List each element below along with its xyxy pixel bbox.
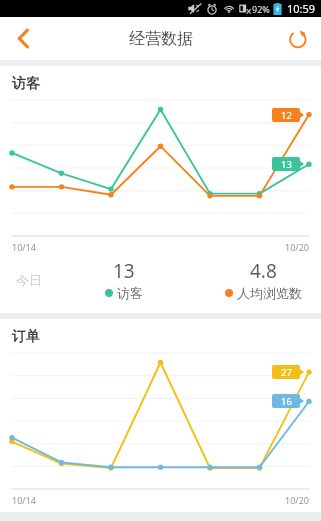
staticText: 人均浏览数 <box>237 285 302 301</box>
staticText: 16 <box>281 395 292 408</box>
staticText: 13 <box>113 258 135 284</box>
staticText: 访客 <box>117 285 143 301</box>
staticText: 经营数据 <box>129 29 193 49</box>
staticText: 访客 <box>12 75 40 93</box>
staticText: 4.8 <box>250 258 277 284</box>
button[interactable]: Refresh <box>275 17 321 60</box>
staticText: 10:59 <box>287 1 316 16</box>
button[interactable]: Back <box>0 17 46 60</box>
staticText: 今日 <box>16 272 42 288</box>
staticText: 10/20 <box>285 241 309 253</box>
staticText: 订单 <box>12 328 40 346</box>
staticText: 92% <box>252 3 270 15</box>
staticText: 12 <box>281 109 292 122</box>
staticText: 10/14 <box>12 494 36 506</box>
staticText: 10/20 <box>285 494 309 506</box>
staticText: 27 <box>281 366 292 379</box>
staticText: 13 <box>281 158 292 171</box>
staticText: 10/14 <box>12 241 36 253</box>
